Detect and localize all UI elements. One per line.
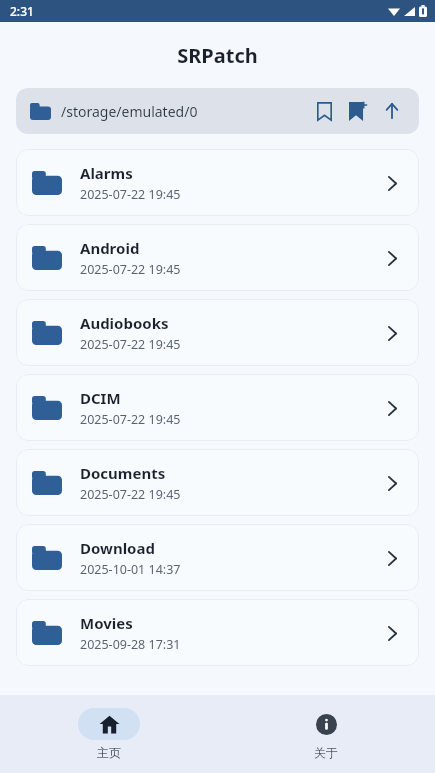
staticText: DCIM	[80, 388, 121, 408]
staticText: Documents	[80, 463, 166, 483]
staticText: 2025-07-22 19:45	[80, 486, 181, 503]
button[interactable]: Android	[16, 224, 419, 291]
staticText: 2025-07-22 19:45	[80, 411, 181, 428]
staticText: 2025-07-22 19:45	[80, 336, 181, 353]
staticText: 2025-09-28 17:31	[80, 636, 181, 653]
button[interactable]: Audiobooks	[16, 299, 419, 366]
staticText: Download	[80, 538, 155, 558]
staticText: 2025-10-01 14:37	[80, 561, 181, 578]
staticText: /storage/emulated/0	[61, 102, 307, 121]
staticText: Alarms	[80, 163, 133, 183]
staticText: 主页	[97, 745, 121, 760]
button[interactable]: 主页	[78, 706, 140, 762]
button[interactable]: Add bookmark	[341, 94, 375, 128]
button[interactable]: Up	[375, 94, 409, 128]
staticText: 2:31	[10, 3, 34, 19]
button[interactable]: DCIM	[16, 374, 419, 441]
staticText: 2025-07-22 19:45	[80, 186, 181, 203]
button[interactable]: Movies	[16, 599, 419, 666]
staticText: Movies	[80, 613, 133, 633]
button[interactable]: /storage/emulated/0	[16, 88, 419, 134]
staticText: Android	[80, 238, 140, 258]
staticText: 2025-07-22 19:45	[80, 261, 181, 278]
staticText: SRPatch	[177, 42, 258, 69]
button[interactable]: Alarms	[16, 149, 419, 216]
button[interactable]: Bookmarks	[307, 94, 341, 128]
staticText: Audiobooks	[80, 313, 169, 333]
button[interactable]: 关于	[295, 706, 357, 762]
button[interactable]: Download	[16, 524, 419, 591]
staticText: 关于	[314, 745, 338, 760]
button[interactable]: Documents	[16, 449, 419, 516]
